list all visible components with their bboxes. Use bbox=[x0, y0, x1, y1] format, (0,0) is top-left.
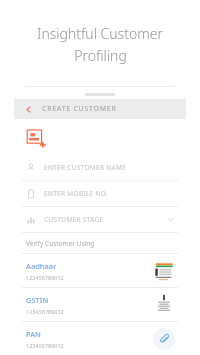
staticText: 123456789012 bbox=[26, 342, 64, 349]
staticText: GSTIN bbox=[26, 295, 49, 305]
button[interactable]: PAN bbox=[14, 322, 186, 355]
button[interactable]: Back bbox=[22, 103, 34, 115]
button[interactable]: Aadhaar bbox=[14, 254, 186, 288]
staticText: Verify Customer Using bbox=[26, 239, 95, 248]
button[interactable]: ENTER MOBILE NO. bbox=[14, 181, 186, 207]
button[interactable]: PAN attachment bbox=[152, 327, 176, 351]
staticText: Profiling bbox=[74, 46, 127, 65]
staticText: CREATE CUSTOMER bbox=[42, 104, 117, 114]
staticText: ENTER MOBILE NO. bbox=[44, 189, 108, 198]
button[interactable]: GSTIN attachment bbox=[152, 293, 176, 317]
staticText: Aadhaar bbox=[26, 261, 57, 271]
button[interactable]: GSTIN bbox=[14, 288, 186, 322]
staticText: PAN bbox=[26, 329, 41, 339]
staticText: 123456789012 bbox=[26, 308, 64, 315]
button[interactable]: Aadhaar attachment bbox=[152, 259, 176, 283]
button[interactable]: CUSTOMER STAGE bbox=[14, 207, 186, 233]
staticText: ENTER CUSTOMER NAME bbox=[44, 163, 127, 172]
staticText: 123456789012 bbox=[26, 274, 64, 281]
staticText: Insightful Customer bbox=[37, 24, 163, 43]
button[interactable]: Back bbox=[14, 99, 186, 119]
button[interactable]: ENTER CUSTOMER NAME bbox=[14, 155, 186, 181]
button[interactable]: Add photo bbox=[26, 128, 46, 148]
staticText: CUSTOMER STAGE bbox=[44, 215, 104, 224]
